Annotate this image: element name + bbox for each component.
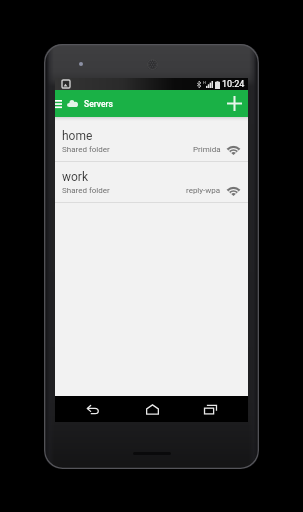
button[interactable]: home bbox=[55, 121, 248, 161]
staticText: Servers bbox=[84, 99, 113, 109]
staticText: Primida bbox=[193, 145, 221, 154]
button[interactable]: Back bbox=[73, 396, 113, 422]
staticText: H bbox=[203, 80, 206, 85]
staticText: Shared folder bbox=[62, 186, 110, 195]
staticText: Shared folder bbox=[62, 145, 110, 154]
staticText: 10:24 bbox=[222, 79, 245, 90]
button[interactable]: Recent apps bbox=[190, 396, 230, 422]
staticText: reply-wpa bbox=[186, 186, 221, 195]
staticText: home bbox=[62, 129, 93, 143]
button[interactable]: Add server bbox=[221, 90, 248, 117]
button[interactable]: work bbox=[55, 162, 248, 202]
button[interactable]: Open navigation drawer bbox=[55, 90, 66, 117]
button[interactable]: Home bbox=[132, 396, 172, 422]
staticText: work bbox=[62, 170, 89, 184]
